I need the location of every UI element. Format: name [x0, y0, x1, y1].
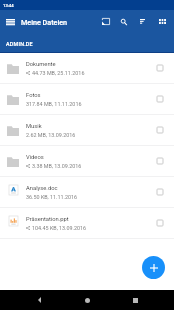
staticText: 317.84 MB, 11.11.2016: [26, 101, 82, 107]
button[interactable]: Cast: [97, 10, 115, 33]
staticText: 3.38 MB, 13.09.2016: [32, 163, 82, 169]
button[interactable]: Sort: [133, 10, 152, 33]
staticText: 2.62 MB, 13.09.2016: [26, 132, 76, 138]
button[interactable]: Select Videos: [150, 150, 169, 172]
button[interactable]: Analyse.doc: [0, 177, 174, 208]
staticText: 44.73 MB, 25.11.2016: [32, 70, 85, 76]
staticText: Videos: [26, 154, 44, 161]
button[interactable]: Back: [30, 291, 48, 309]
button[interactable]: Select Musik: [150, 119, 169, 141]
button[interactable]: Select Fotos: [150, 88, 169, 110]
staticText: Fotos: [26, 92, 41, 99]
button[interactable]: Select Dokumente: [150, 57, 169, 79]
staticText: Musik: [26, 123, 42, 130]
staticText: 13:44: [3, 3, 14, 8]
button[interactable]: Select Analyse.doc: [150, 181, 169, 203]
staticText: 104.45 KB, 13.09.2016: [32, 225, 87, 231]
button[interactable]: Recents: [126, 291, 144, 309]
button[interactable]: Home: [78, 291, 96, 309]
button[interactable]: Videos: [0, 146, 174, 177]
staticText: Analyse.doc: [26, 185, 58, 192]
button[interactable]: Menu: [0, 10, 21, 33]
staticText: 36.50 KB, 11.11.2016: [26, 194, 78, 200]
button[interactable]: Dokumente: [0, 53, 174, 84]
staticText: Präsentation.ppt: [26, 216, 69, 223]
staticText: Dokumente: [26, 61, 56, 68]
button[interactable]: Select Präsentation.ppt: [150, 212, 169, 234]
staticText: Meine Dateien: [21, 18, 68, 26]
button[interactable]: Musik: [0, 115, 174, 146]
staticText: ADMIN.DE: [6, 41, 33, 47]
button[interactable]: Fotos: [0, 84, 174, 115]
button[interactable]: Präsentation.ppt: [0, 208, 174, 239]
button[interactable]: Grid view: [152, 10, 172, 33]
button[interactable]: Search: [115, 10, 133, 33]
button[interactable]: Add: [142, 256, 165, 279]
